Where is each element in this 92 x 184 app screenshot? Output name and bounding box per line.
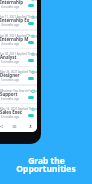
staticText: Grab the (28, 155, 65, 167)
staticText: Support (0, 91, 18, 97)
staticText: Internship M (0, 36, 29, 42)
button[interactable]: May 14, 2021 Applied Through (0, 104, 37, 121)
staticText: Opportunities (16, 163, 76, 175)
staticText: Internship Ex (0, 17, 30, 23)
staticText: 6 months ago (1, 115, 20, 119)
other: Save job (32, 71, 34, 74)
button[interactable] (28, 114, 34, 117)
staticText: Internship (0, 0, 24, 5)
button[interactable] (28, 96, 34, 99)
staticText: 4 months ago (1, 5, 20, 9)
staticText: 5 months ago (1, 60, 20, 64)
other: Save job (32, 35, 34, 38)
staticText: 6 months ago (1, 97, 20, 101)
other: Save job (32, 16, 34, 19)
button[interactable]: Jun 14, 2021 Applied Through (0, 0, 37, 11)
staticText: 4 months ago (1, 42, 20, 46)
button[interactable] (28, 41, 34, 44)
staticText: Sales Exec (0, 109, 23, 115)
button[interactable] (28, 22, 34, 25)
button[interactable]: Whatever You Search For, Just Believe (0, 86, 37, 103)
button[interactable] (28, 4, 34, 7)
staticText: Jun 08, 2021 Applied Through (0, 34, 37, 38)
staticText: May 14, 2021 Applied Through (0, 107, 37, 111)
staticText: Whatever You Search For, Just Believe (0, 89, 37, 93)
button[interactable]: Jun 02, 2021 Applied Through (0, 49, 37, 66)
button[interactable]: Profile (26, 121, 35, 132)
button[interactable]: Network (0, 121, 6, 132)
staticText: Jun 11, 2021 Applied Through (0, 15, 37, 19)
other: Save job (32, 108, 34, 111)
other: Save job (32, 90, 34, 93)
button[interactable]: Jobs (10, 121, 19, 132)
button[interactable] (28, 77, 34, 80)
staticText: 5 months ago (1, 78, 20, 82)
staticText: 4 months ago (1, 23, 20, 27)
staticText: Jun 02, 2021 Applied Through (0, 52, 37, 56)
other: Save job (32, 53, 34, 56)
button[interactable]: May 26, 2021 Applied Through (0, 67, 37, 84)
staticText: May 26, 2021 Applied Through (0, 70, 37, 74)
staticText: Designer (0, 72, 20, 78)
staticText: Analyst (0, 54, 17, 60)
button[interactable]: Jun 08, 2021 Applied Through (0, 31, 37, 48)
button[interactable]: Jun 11, 2021 Applied Through (0, 12, 37, 29)
button[interactable] (28, 59, 34, 62)
staticText: Jun 14, 2021 Applied Through (0, 0, 37, 1)
